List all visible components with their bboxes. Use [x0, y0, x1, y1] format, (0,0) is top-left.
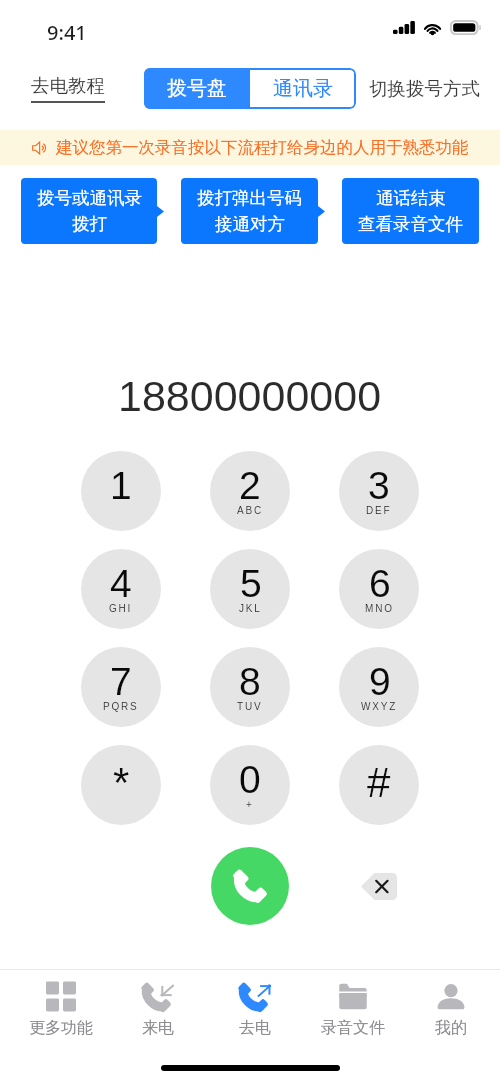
staticText: 录音文件 — [321, 1018, 385, 1038]
staticText: 8 — [239, 660, 261, 704]
staticText: PQRS — [103, 701, 139, 712]
staticText: 拨号盘 — [167, 76, 227, 101]
staticText: TUV — [237, 701, 263, 712]
staticText: 5 — [240, 562, 262, 606]
button[interactable]: 4 — [81, 549, 161, 629]
staticText: 通讯录 — [273, 76, 333, 101]
button[interactable]: 5 — [210, 549, 290, 629]
staticText: 2 — [239, 464, 261, 508]
button[interactable]: 更多功能 — [12, 970, 109, 1042]
staticText: 切换拨号方式 — [369, 77, 480, 100]
staticText: + — [246, 799, 254, 810]
staticText: 去电教程 — [31, 74, 105, 97]
staticText: 4 — [110, 562, 132, 606]
button[interactable]: 来电 — [109, 970, 206, 1042]
button[interactable]: Call — [211, 847, 289, 925]
staticText: # — [367, 759, 391, 806]
staticText: 拨号或通讯录 — [37, 187, 142, 209]
staticText: JKL — [239, 603, 262, 614]
button[interactable]: 拨打弹出号码 — [181, 178, 318, 244]
button[interactable]: 8 — [210, 647, 290, 727]
staticText: 去电 — [239, 1018, 271, 1038]
button[interactable]: # — [339, 745, 419, 825]
staticText: 拨打 — [72, 213, 107, 235]
staticText: 7 — [110, 660, 132, 704]
button[interactable]: 9 — [339, 647, 419, 727]
button[interactable]: 1 — [81, 451, 161, 531]
button[interactable]: 拨号盘 — [144, 68, 250, 109]
button[interactable]: 切换拨号方式 — [369, 77, 480, 100]
button[interactable]: 0 — [210, 745, 290, 825]
button[interactable]: 去电 — [206, 970, 304, 1042]
staticText: DEF — [366, 505, 392, 516]
button[interactable]: 6 — [339, 549, 419, 629]
staticText: 18800000000 — [118, 372, 382, 420]
staticText: * — [113, 759, 130, 806]
button[interactable]: 通讯录 — [250, 68, 356, 109]
staticText: 更多功能 — [29, 1018, 93, 1038]
staticText: 6 — [369, 562, 391, 606]
button[interactable]: 3 — [339, 451, 419, 531]
staticText: 拨打弹出号码 — [197, 187, 302, 209]
button[interactable]: 7 — [81, 647, 161, 727]
staticText: 9 — [369, 660, 391, 704]
button[interactable]: 我的 — [402, 970, 500, 1042]
button[interactable]: * — [81, 745, 161, 825]
staticText: 我的 — [435, 1018, 467, 1038]
staticText: ABC — [237, 505, 263, 516]
staticText: GHI — [109, 603, 133, 614]
button[interactable]: 拨号或通讯录 — [21, 178, 157, 244]
staticText: 来电 — [142, 1018, 174, 1038]
button[interactable]: 录音文件 — [304, 970, 402, 1042]
staticText: WXYZ — [361, 701, 398, 712]
staticText: 通话结束 — [376, 187, 446, 209]
staticText: 3 — [368, 464, 390, 508]
staticText: 查看录音文件 — [358, 213, 463, 235]
staticText: MNO — [365, 603, 394, 614]
staticText: 接通对方 — [215, 213, 285, 235]
button[interactable]: 去电教程 — [31, 74, 105, 103]
staticText: 1 — [110, 464, 132, 508]
staticText: 0 — [239, 758, 261, 802]
button[interactable]: Backspace — [361, 873, 397, 900]
staticText: 9:41 — [47, 19, 87, 46]
button[interactable]: 2 — [210, 451, 290, 531]
staticText: 建议您第一次录音按以下流程打给身边的人用于熟悉功能 — [56, 137, 469, 158]
button[interactable]: 通话结束 — [342, 178, 479, 244]
